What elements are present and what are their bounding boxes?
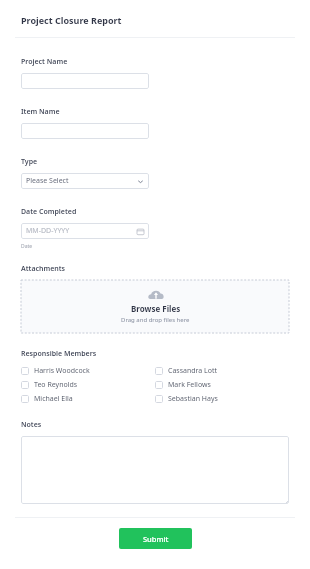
staticText: Attachments [21,264,66,274]
staticText: Harris Woodcock [34,366,90,376]
button[interactable]: Teo Reynolds [21,378,78,392]
staticText: Responsible Members [21,349,97,359]
staticText: Cassandra Lott [168,366,218,376]
other: Pick date [137,228,144,235]
button[interactable]: MM-DD-YYYY [21,223,149,239]
button[interactable]: Browse Files [21,280,289,333]
staticText: Mark Fellows [168,380,211,390]
button[interactable] [21,123,149,139]
staticText: Date [21,243,33,250]
staticText: Michael Ella [34,394,73,404]
staticText: Item Name [21,107,60,117]
staticText: Browse Files [131,303,181,314]
button[interactable]: Submit [119,528,192,549]
button[interactable]: Open type dropdown [21,173,149,189]
button[interactable] [21,73,149,89]
staticText: Submit [143,534,169,544]
staticText: Drag and drop files here [121,316,190,324]
staticText: Type [21,157,38,167]
staticText: Please Select [26,176,69,186]
button[interactable]: Cassandra Lott [155,364,218,378]
other: Open type dropdown [137,178,144,185]
button[interactable] [21,436,289,504]
staticText: Date Completed [21,207,77,217]
staticText: Sebastian Hays [168,394,218,404]
button[interactable]: Mark Fellows [155,378,211,392]
staticText: Teo Reynolds [34,380,78,390]
staticText: Project Closure Report [21,14,122,26]
staticText: Notes [21,420,42,430]
staticText: MM-DD-YYYY [26,226,70,236]
staticText: Project Name [21,57,68,67]
button[interactable]: Harris Woodcock [21,364,90,378]
button[interactable]: Sebastian Hays [155,392,218,406]
button[interactable]: Michael Ella [21,392,73,406]
